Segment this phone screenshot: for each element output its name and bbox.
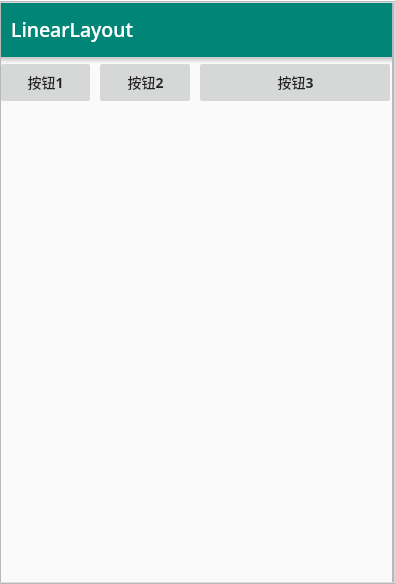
button[interactable]: 按钮1 (1, 64, 90, 101)
staticText: 按钮3 (277, 72, 314, 92)
button[interactable]: 按钮3 (200, 64, 390, 101)
staticText: LinearLayout (11, 16, 133, 43)
button[interactable]: 按钮2 (100, 64, 190, 101)
staticText: 按钮1 (27, 72, 64, 92)
staticText: 按钮2 (127, 72, 164, 92)
